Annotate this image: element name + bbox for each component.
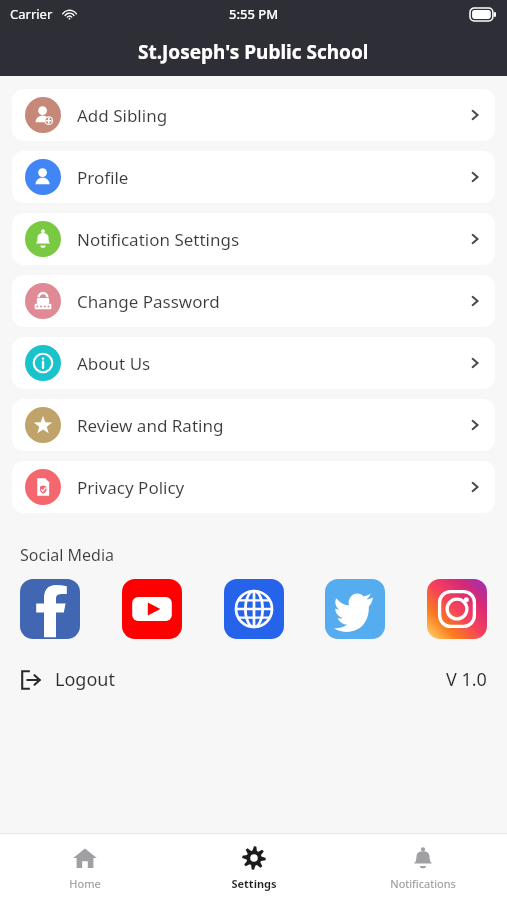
staticText: Notifications	[390, 876, 456, 891]
button[interactable]: Add Sibling	[12, 89, 495, 141]
button[interactable]: YouTube	[122, 579, 182, 639]
button[interactable]: Privacy Policy	[12, 461, 495, 513]
staticText: Logout	[55, 667, 115, 692]
staticText: St.Joseph's Public School	[138, 39, 369, 65]
staticText: Settings	[231, 876, 277, 891]
button[interactable]: Notification Settings	[12, 213, 495, 265]
button[interactable]: Change Password	[12, 275, 495, 327]
staticText: About Us	[77, 352, 151, 375]
staticText: Add Sibling	[77, 104, 168, 127]
button[interactable]: Website	[224, 579, 284, 639]
staticText: Privacy Policy	[77, 476, 185, 499]
staticText: Social Media	[20, 544, 115, 566]
button[interactable]: Instagram	[427, 579, 487, 639]
button[interactable]: Logout	[20, 667, 115, 692]
button[interactable]: Notifications	[338, 834, 507, 900]
button[interactable]: About Us	[12, 337, 495, 389]
staticText: Profile	[77, 166, 129, 189]
staticText: V 1.0	[446, 667, 487, 692]
staticText: 5:55 PM	[229, 5, 279, 23]
staticText: Carrier	[10, 5, 53, 23]
staticText: Review and Rating	[77, 414, 224, 437]
button[interactable]: Home	[0, 834, 169, 900]
staticText: Notification Settings	[77, 228, 240, 251]
button[interactable]: Twitter	[325, 579, 385, 639]
button[interactable]: Settings	[169, 834, 338, 900]
button[interactable]: Profile	[12, 151, 495, 203]
button[interactable]: Facebook	[20, 579, 80, 639]
staticText: Change Password	[77, 290, 220, 313]
button[interactable]: Review and Rating	[12, 399, 495, 451]
staticText: Home	[69, 876, 101, 891]
